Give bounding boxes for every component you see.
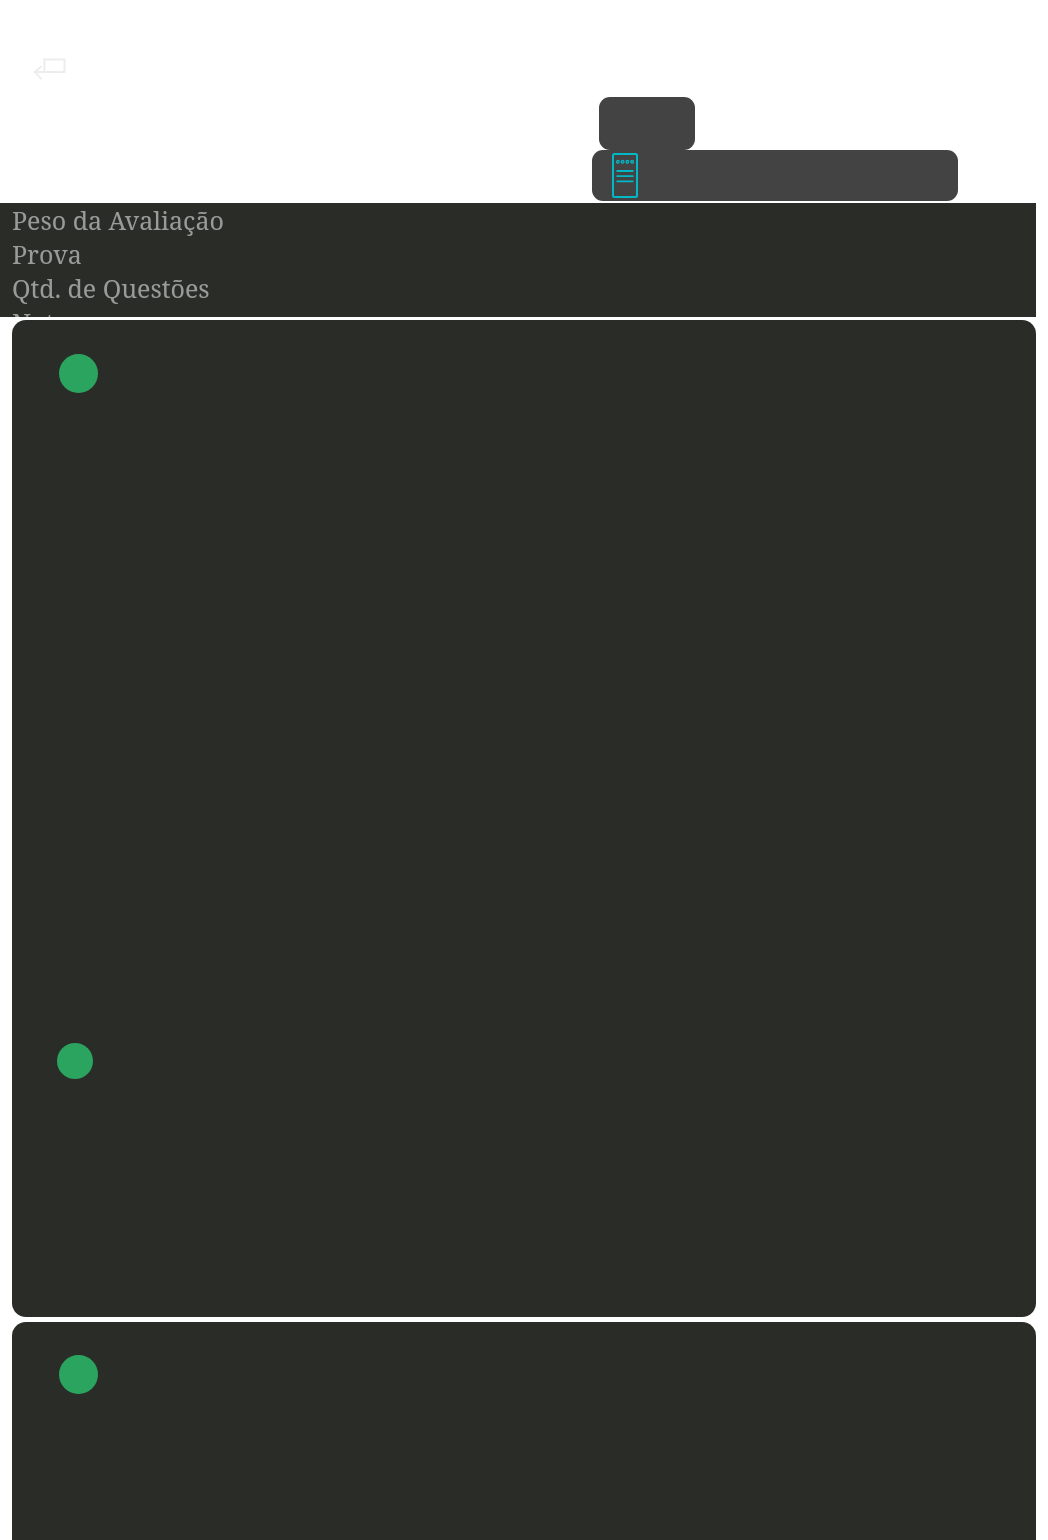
button[interactable]: Panel xyxy=(599,97,695,150)
button[interactable] xyxy=(12,1322,1036,1540)
staticText: Qtd. de Questões xyxy=(12,271,210,305)
staticText: Prova xyxy=(12,237,82,271)
button[interactable]: Assessment row xyxy=(592,150,958,201)
staticText: Peso da Avaliação xyxy=(12,203,224,237)
staticText: Nota xyxy=(12,305,69,317)
button[interactable]: Back xyxy=(28,46,76,94)
button[interactable] xyxy=(12,320,1036,1317)
